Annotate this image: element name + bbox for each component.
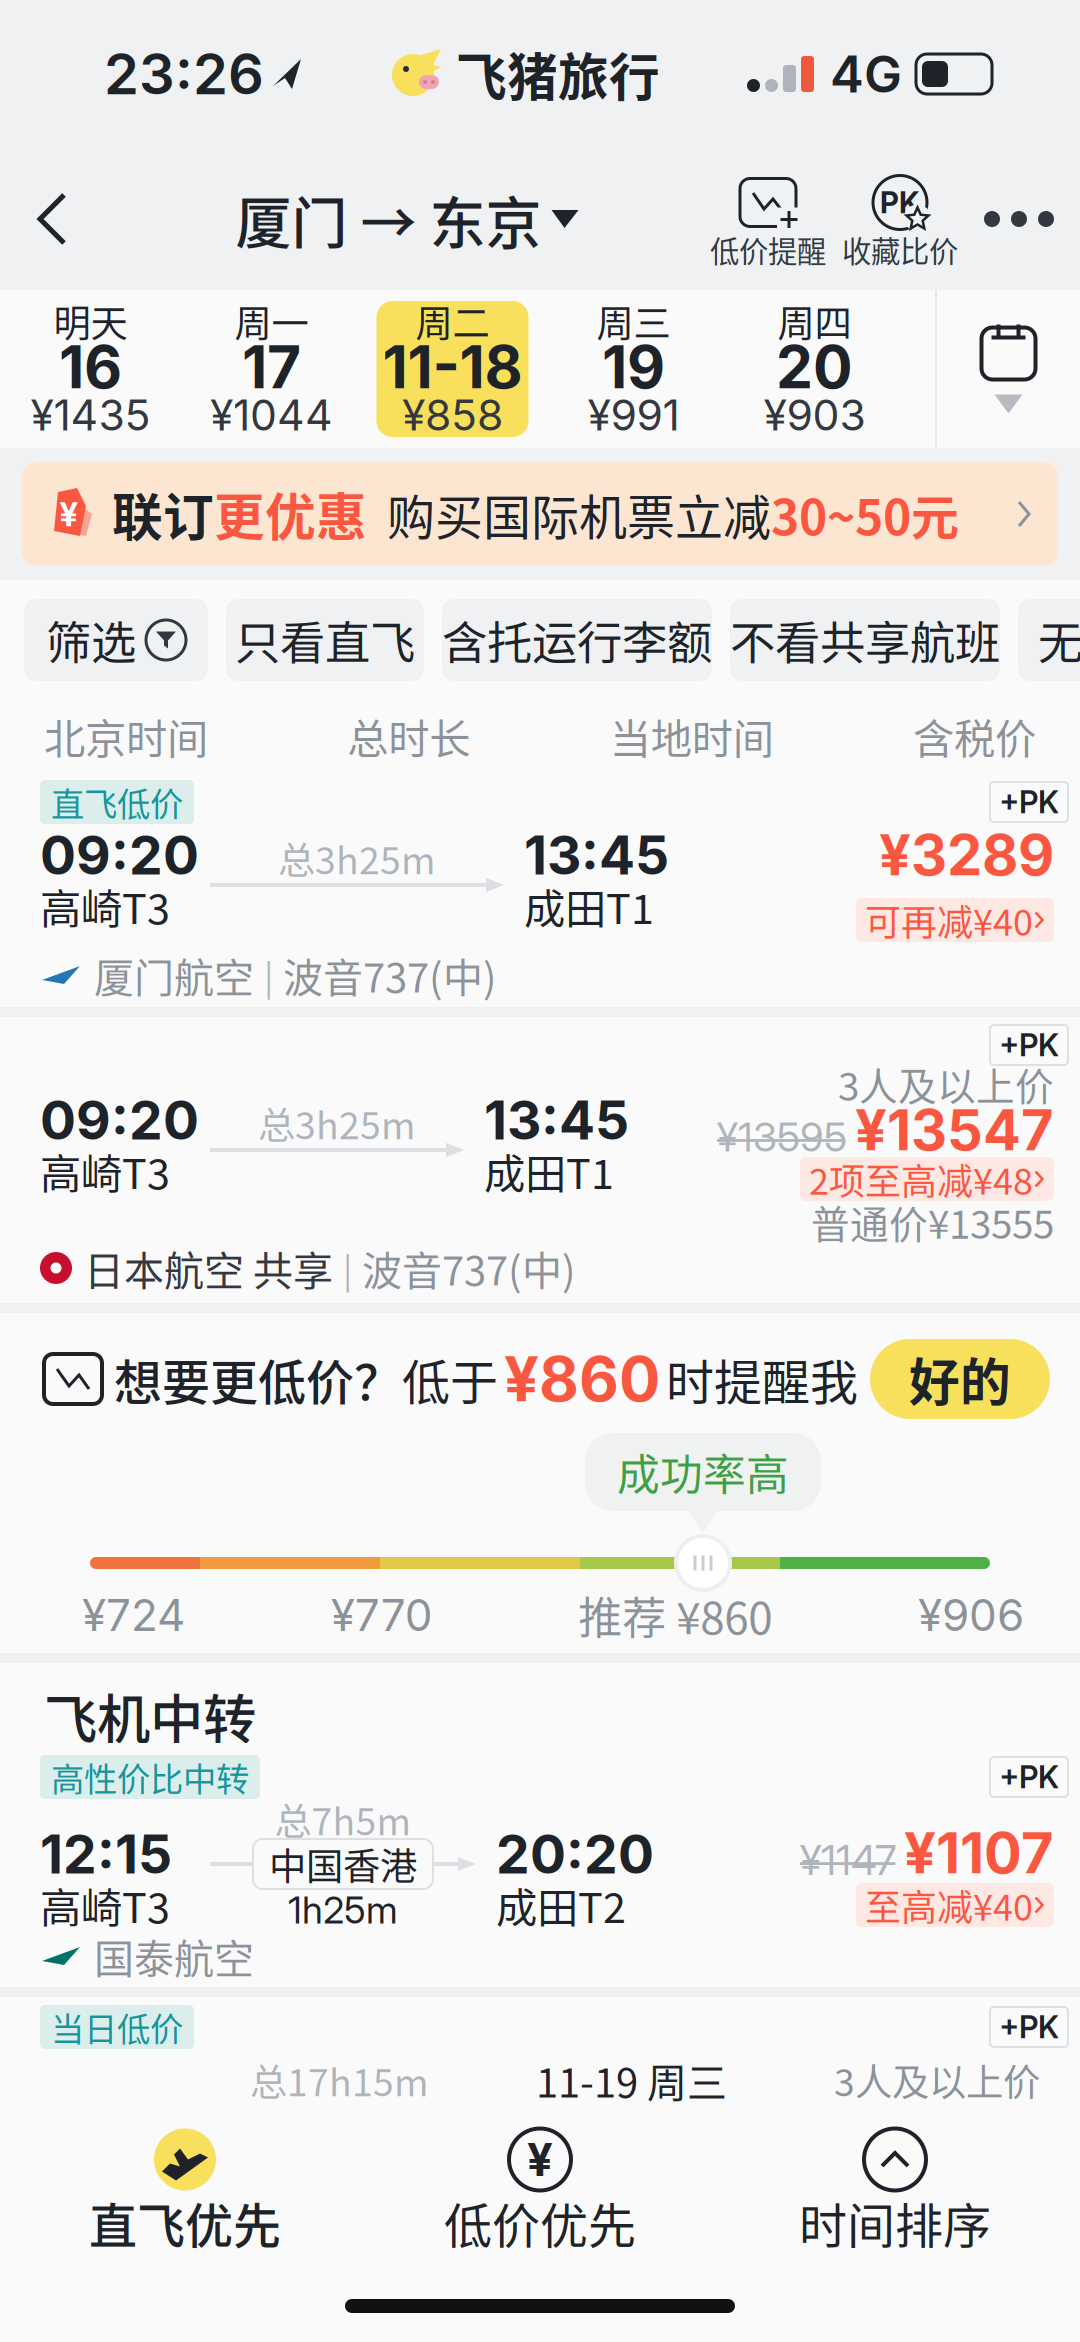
staticText: 低价优先 <box>444 2188 636 2257</box>
staticText: 波音737(中) <box>362 1239 576 1297</box>
button[interactable]: +PK <box>0 1017 1080 1303</box>
button[interactable]: 周三 <box>543 290 724 448</box>
staticText: 中国香港 <box>269 1837 417 1891</box>
staticText: 09:20 <box>40 1088 199 1152</box>
button[interactable]: 含托运行李额 <box>442 599 712 681</box>
button[interactable]: +PK <box>990 782 1068 822</box>
staticText: 13:45 <box>524 823 669 887</box>
staticText: 含托运行李额 <box>442 607 712 673</box>
button[interactable]: 厦门 → 东京 <box>235 148 578 290</box>
staticText: 低价提醒 <box>710 228 826 271</box>
button[interactable]: ¥ <box>0 448 1080 580</box>
staticText: ¥3289 <box>879 821 1054 889</box>
staticText: 总7h5m <box>274 1792 411 1846</box>
staticText: 不看共享航班 <box>730 607 1000 673</box>
staticText: 17 <box>242 331 301 402</box>
staticText: 09:20 <box>40 823 199 887</box>
staticText: +PK <box>999 1026 1059 1063</box>
staticText: 19 <box>602 331 665 402</box>
staticText: 成功率高 <box>617 1441 789 1503</box>
staticText: 12:15 <box>40 1822 172 1886</box>
staticText: 想要更低价？ <box>114 1344 402 1414</box>
button[interactable]: 低价提醒 <box>710 173 826 264</box>
button[interactable]: More <box>958 148 1080 290</box>
staticText: 3人及以上价 <box>834 2053 1040 2107</box>
staticText: 联订 <box>112 477 214 551</box>
staticText: 周三 <box>596 294 670 348</box>
button[interactable]: 筛选 <box>24 599 208 681</box>
staticText: 高崎T3 <box>40 1141 170 1201</box>
button[interactable]: PK <box>826 173 958 264</box>
button[interactable]: 直飞低价 <box>0 772 1080 1007</box>
staticText: 只看直飞 <box>235 607 415 673</box>
staticText: +PK <box>999 2008 1059 2045</box>
staticText: 20 <box>776 331 853 402</box>
staticText: 明天 <box>53 294 127 348</box>
staticText: ¥858 <box>402 389 503 441</box>
staticText: 筛选 <box>46 607 136 673</box>
button[interactable]: 周四 <box>724 290 905 448</box>
button[interactable]: 只看直飞 <box>226 599 424 681</box>
staticText: 日本航空 共享 <box>84 1239 333 1297</box>
staticText: 厦门 → 东京 <box>235 178 541 260</box>
button[interactable]: Calendar <box>937 290 1080 448</box>
staticText: | <box>264 950 273 1000</box>
staticText: 低于 <box>402 1344 498 1414</box>
staticText: 周二 <box>415 294 489 348</box>
button[interactable]: 无需 <box>1018 599 1080 681</box>
staticText: 总3h25m <box>258 1096 416 1150</box>
staticText: 30~50元 <box>771 479 959 549</box>
staticText: 当地时间 <box>610 706 774 766</box>
button[interactable]: 时间排序 <box>725 2105 1065 2270</box>
staticText: 13:45 <box>484 1088 629 1152</box>
staticText: 购买国际机票立减 <box>387 479 771 549</box>
staticText: 直飞优先 <box>89 2188 281 2257</box>
staticText: ¥991 <box>587 389 679 441</box>
staticText: ¥1147 <box>800 1835 896 1885</box>
staticText: 1h25m <box>288 1887 398 1933</box>
button[interactable]: 周二 <box>362 290 543 448</box>
staticText: 周四 <box>777 294 851 348</box>
staticText: | <box>343 1243 352 1293</box>
staticText: 成田T1 <box>524 876 654 936</box>
staticText: 含税价 <box>913 706 1036 766</box>
staticText: ¥860 <box>504 1342 660 1416</box>
button[interactable]: +PK <box>990 1025 1068 1065</box>
staticText: +PK <box>999 783 1059 820</box>
staticText: 飞机中转 <box>44 1677 256 1755</box>
staticText: 3人及以上价 <box>838 1056 1054 1112</box>
staticText: 总时长 <box>347 706 470 766</box>
staticText: 无需 <box>1038 607 1080 673</box>
staticText: 波音737(中) <box>283 946 497 1004</box>
button[interactable]: Back <box>0 148 104 290</box>
button[interactable]: 直飞优先 <box>15 2105 355 2270</box>
staticText: ¥1044 <box>210 389 333 441</box>
button[interactable]: +PK <box>990 1757 1068 1797</box>
staticText: 国泰航空 <box>94 1927 254 1985</box>
staticText: ¥ <box>59 494 78 534</box>
staticText: ¥724 <box>82 1588 185 1642</box>
staticText: ¥13547 <box>855 1096 1054 1164</box>
staticText: 厦门航空 <box>94 946 254 1004</box>
staticText: 当日低价 <box>51 2003 183 2051</box>
staticText: ¥770 <box>331 1588 433 1642</box>
button[interactable]: 不看共享航班 <box>730 599 1000 681</box>
staticText: PK <box>880 185 920 220</box>
button[interactable]: 周一 <box>181 290 362 448</box>
button[interactable]: 高性价比中转 <box>0 1743 1080 1987</box>
staticText: 收藏比价 <box>842 228 958 271</box>
button[interactable]: ¥ <box>370 2105 710 2270</box>
button[interactable]: 明天 <box>0 290 181 448</box>
button[interactable]: 好的 <box>870 1339 1050 1419</box>
staticText: 普通价¥13555 <box>811 1194 1054 1250</box>
staticText: ¥13595 <box>717 1113 847 1161</box>
staticText: 时间排序 <box>799 2188 991 2257</box>
staticText: 11-18 <box>382 331 522 402</box>
staticText: 23:26 <box>104 40 264 108</box>
staticText: 高性价比中转 <box>51 1753 249 1801</box>
staticText: 总3h25m <box>278 831 436 885</box>
staticText: +PK <box>999 1758 1059 1795</box>
staticText: 16 <box>59 331 122 402</box>
staticText: 北京时间 <box>44 706 208 766</box>
button[interactable]: +PK <box>990 2007 1068 2047</box>
